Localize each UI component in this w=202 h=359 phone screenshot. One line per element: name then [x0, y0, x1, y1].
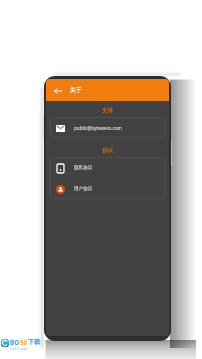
staticText: 隐私协议: [74, 165, 93, 171]
staticText: 用户协议: [74, 186, 93, 192]
staticText: 50: [20, 338, 28, 347]
button[interactable]: 隐私协议: [50, 157, 165, 178]
staticText: 协议: [102, 147, 113, 154]
button[interactable]: 用户协议: [50, 178, 165, 199]
staticText: 关于: [70, 86, 82, 94]
button[interactable]: public@bytewero.com: [50, 117, 165, 138]
staticText: 支持: [102, 107, 113, 114]
staticText: BO: [10, 338, 20, 347]
button[interactable]: Back: [51, 84, 64, 97]
staticText: b o 5 0 . c o m: [10, 347, 27, 351]
staticText: public@bytewero.com: [74, 125, 122, 131]
staticText: 下载: [28, 338, 41, 346]
